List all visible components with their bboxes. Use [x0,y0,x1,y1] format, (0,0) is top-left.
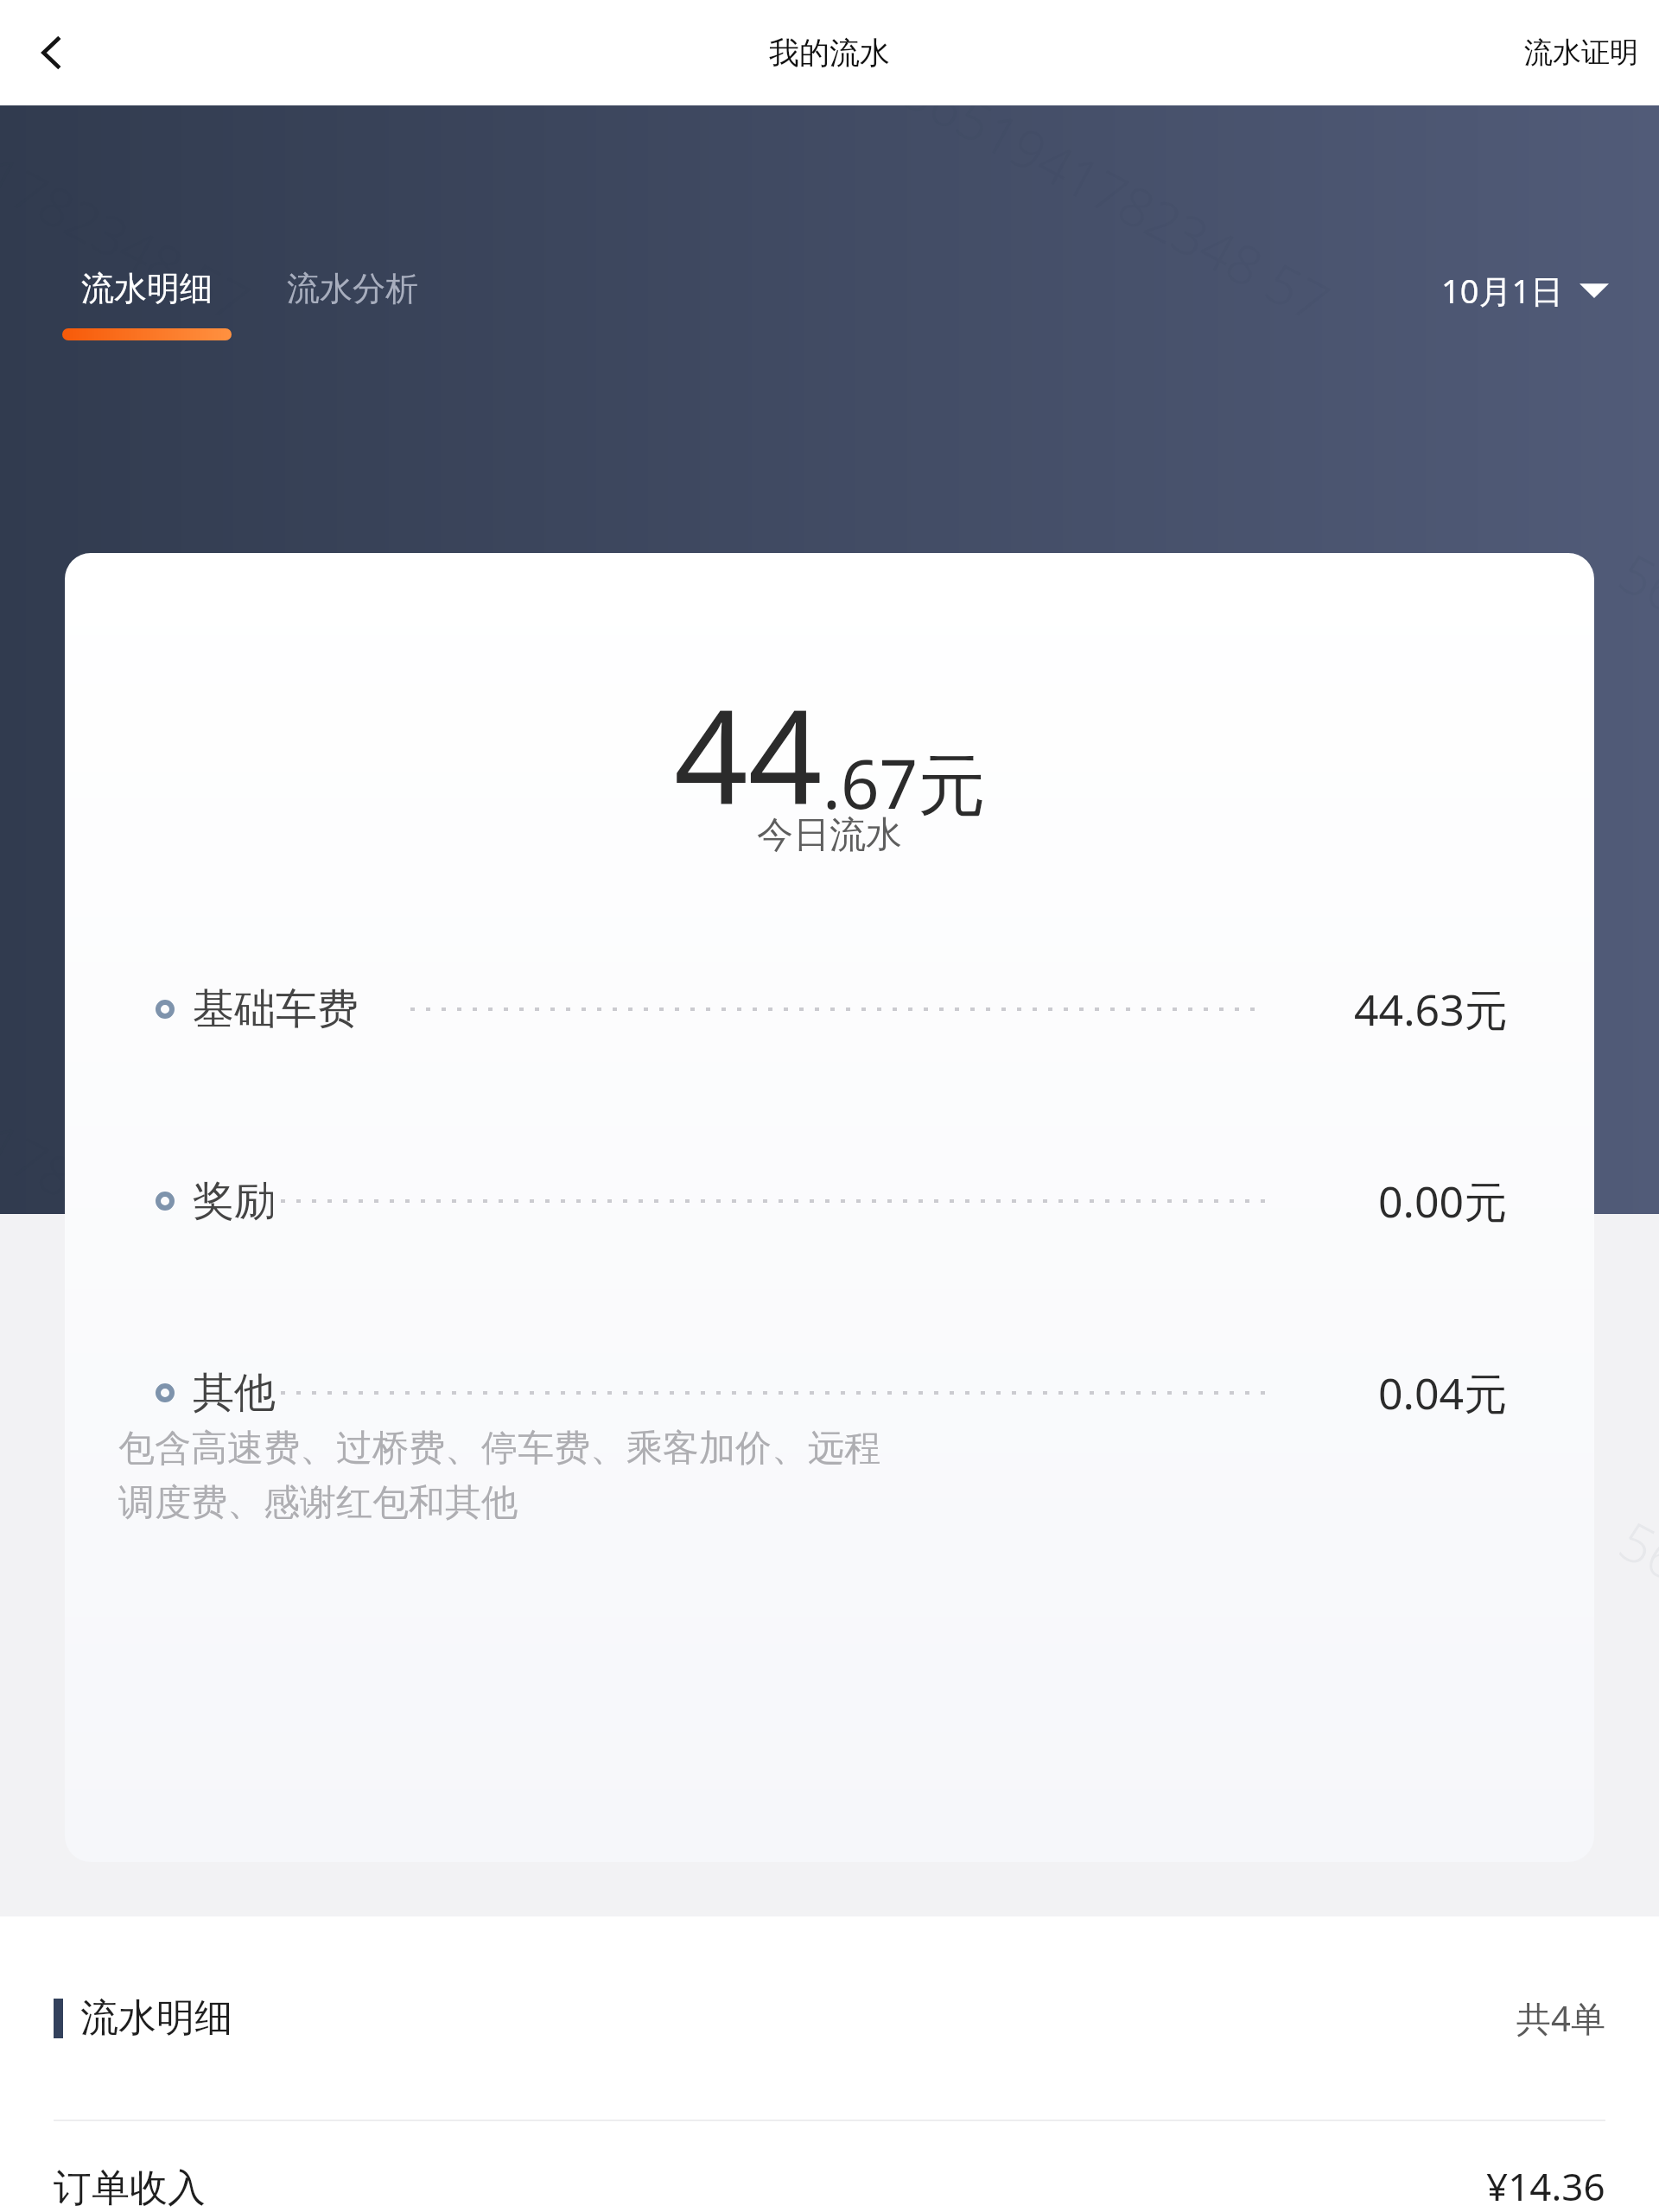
staticText: .67元 [823,737,986,829]
staticText: 调度费、感谢红包和其他 [118,1480,518,1526]
staticText: 包含高速费、过桥费、停车费、乘客加价、远程 [118,1426,880,1471]
staticText: 0.04元 [1378,1363,1508,1422]
staticText: 今日流水 [757,812,902,858]
staticText: 0.00元 [1378,1172,1508,1230]
staticText: 我的流水 [769,34,890,72]
button[interactable]: 流水证明 [1503,21,1659,85]
button[interactable]: 基础车费 [65,957,1594,1061]
button[interactable]: 返回 [21,22,83,84]
staticText: 基础车费 [193,983,359,1035]
staticText: ¥14.36 [1486,2160,1605,2212]
button[interactable]: 流水分析 [287,268,418,309]
staticText: 流水明细 [81,268,213,309]
button[interactable]: 奖励 [65,1149,1594,1253]
staticText: 44 [674,665,823,842]
staticText: 流水证明 [1524,35,1638,71]
staticText: 流水明细 [80,1994,232,2042]
staticText: 奖励 [193,1175,276,1227]
staticText: 44.63元 [1354,980,1508,1039]
staticText: 流水分析 [287,268,418,309]
button[interactable]: 流水明细 [0,1916,1659,2120]
button[interactable]: 订单收入 [0,2121,1659,2212]
staticText: 订单收入 [54,2164,206,2212]
button[interactable]: 10月1日 [1441,268,1609,313]
button[interactable]: 流水明细 [62,268,232,340]
button[interactable]: 其他 [65,1341,1594,1445]
staticText: 其他 [193,1367,276,1419]
staticText: 共4单 [1516,1994,1605,2042]
staticText: 10月1日 [1441,268,1564,313]
